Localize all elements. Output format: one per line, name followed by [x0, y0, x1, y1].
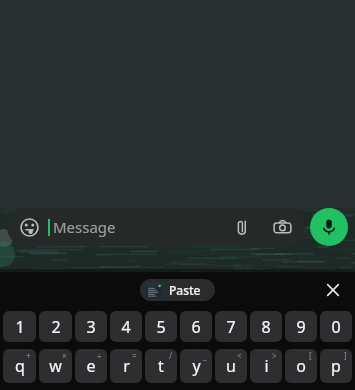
button[interactable]: Voice message — [310, 208, 348, 246]
staticText: w — [49, 355, 62, 377]
button[interactable]: u — [215, 349, 247, 383]
staticText: × — [62, 350, 67, 361]
staticText: > — [272, 350, 277, 361]
staticText: i — [264, 355, 269, 377]
staticText: 8 — [261, 316, 271, 338]
staticText: _ — [203, 350, 207, 361]
staticText: e — [86, 355, 96, 377]
button[interactable]: 7 — [215, 311, 247, 342]
button[interactable]: 0 — [320, 311, 352, 342]
button[interactable]: p — [320, 349, 352, 383]
button[interactable]: 4 — [110, 311, 142, 342]
staticText: 6 — [191, 316, 201, 338]
button[interactable]: t — [145, 349, 177, 383]
button[interactable]: w — [39, 349, 72, 383]
staticText: r — [123, 355, 130, 377]
staticText: 9 — [296, 316, 306, 338]
button[interactable]: 9 — [285, 311, 317, 342]
staticText: ] — [344, 350, 347, 361]
staticText: u — [226, 355, 236, 377]
staticText: 2 — [51, 316, 61, 338]
button[interactable]: Camera — [269, 214, 295, 240]
staticText: q — [15, 355, 25, 377]
button[interactable]: e — [75, 349, 107, 383]
staticText: 0 — [331, 316, 341, 338]
button[interactable]: Paste — [140, 279, 215, 301]
button[interactable]: Close — [322, 279, 344, 301]
button[interactable]: 2 — [39, 311, 72, 342]
button[interactable]: y — [180, 349, 212, 383]
staticText: [ — [309, 350, 312, 361]
staticText: 7 — [226, 316, 236, 338]
button[interactable]: 5 — [145, 311, 177, 342]
staticText: < — [237, 350, 242, 361]
staticText: / — [169, 350, 172, 361]
button[interactable]: 6 — [180, 311, 212, 342]
button[interactable]: Attach — [229, 214, 255, 240]
staticText: 5 — [156, 316, 166, 338]
staticText: Message — [53, 217, 116, 237]
button[interactable]: q — [3, 349, 36, 383]
staticText: 4 — [121, 316, 131, 338]
button[interactable]: 8 — [250, 311, 282, 342]
staticText: p — [331, 355, 341, 377]
button[interactable]: 3 — [75, 311, 107, 342]
staticText: = — [132, 350, 137, 361]
button[interactable]: 1 — [3, 311, 36, 342]
staticText: o — [296, 355, 306, 377]
button[interactable]: Emoji — [7, 208, 305, 246]
staticText: 3 — [86, 316, 96, 338]
staticText: + — [26, 350, 31, 361]
button[interactable]: i — [250, 349, 282, 383]
staticText: y — [192, 355, 201, 377]
button[interactable]: Emoji — [17, 215, 41, 239]
staticText: Paste — [169, 282, 201, 298]
button[interactable]: r — [110, 349, 142, 383]
staticText: t — [158, 355, 164, 377]
staticText: 1 — [15, 316, 25, 338]
staticText: ÷ — [97, 350, 102, 361]
button[interactable]: o — [285, 349, 317, 383]
